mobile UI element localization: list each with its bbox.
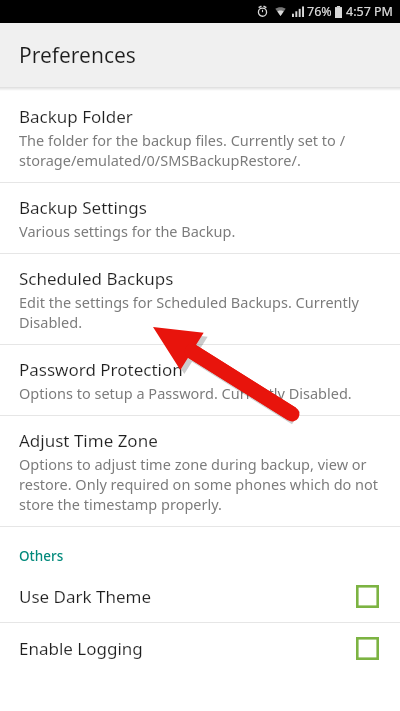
button[interactable]: Password Protection <box>0 345 400 415</box>
button[interactable]: Adjust Time Zone <box>0 416 400 526</box>
staticText: Edit the settings for Scheduled Backups.… <box>19 292 384 332</box>
staticText: Backup Settings <box>19 196 147 219</box>
button[interactable]: Scheduled Backups <box>0 254 400 344</box>
staticText: Enable Logging <box>19 637 356 660</box>
staticText: Options to adjust time zone during backu… <box>19 454 384 514</box>
staticText: Backup Folder <box>19 105 133 128</box>
staticText: 76% <box>307 3 332 20</box>
staticText: Options to setup a Password. Currently D… <box>19 383 352 403</box>
staticText: Password Protection <box>19 358 183 381</box>
staticText: 4:57 PM <box>346 3 393 20</box>
staticText: Use Dark Theme <box>19 585 356 608</box>
staticText: The folder for the backup files. Current… <box>19 130 384 170</box>
button[interactable]: Backup Settings <box>0 183 400 253</box>
staticText: Scheduled Backups <box>19 267 174 290</box>
button[interactable]: Use Dark Theme <box>0 571 400 622</box>
staticText: Various settings for the Backup. <box>19 221 236 241</box>
button[interactable]: Backup Folder <box>0 92 400 182</box>
staticText: Others <box>19 547 64 565</box>
staticText: Preferences <box>19 41 136 70</box>
button[interactable]: Enable Logging <box>0 623 400 674</box>
staticText: Adjust Time Zone <box>19 429 158 452</box>
